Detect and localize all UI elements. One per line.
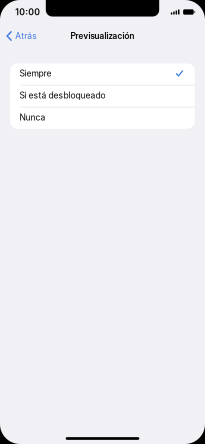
staticText: Previsualización bbox=[70, 31, 134, 41]
button[interactable]: Atrás bbox=[0, 28, 43, 44]
staticText: Atrás bbox=[15, 31, 36, 41]
staticText: 10:00 bbox=[15, 7, 40, 17]
staticText: Si está desbloqueado bbox=[19, 90, 105, 100]
button[interactable]: Siempre bbox=[10, 63, 195, 85]
staticText: Siempre bbox=[19, 68, 51, 78]
button[interactable]: Si está desbloqueado bbox=[10, 85, 195, 107]
button[interactable]: Nunca bbox=[10, 107, 195, 129]
staticText: Nunca bbox=[19, 112, 45, 122]
